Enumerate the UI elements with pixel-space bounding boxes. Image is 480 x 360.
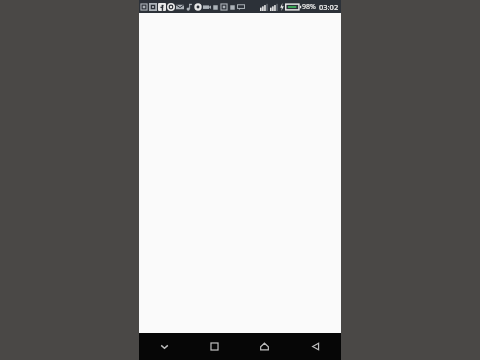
staticText: 98% <box>302 2 316 12</box>
button[interactable]: Recent apps <box>189 333 239 360</box>
button[interactable]: Home <box>239 333 290 360</box>
staticText: 03:02 <box>319 2 339 12</box>
button[interactable]: Hide keyboard <box>139 333 189 360</box>
button[interactable]: Back <box>290 333 341 360</box>
